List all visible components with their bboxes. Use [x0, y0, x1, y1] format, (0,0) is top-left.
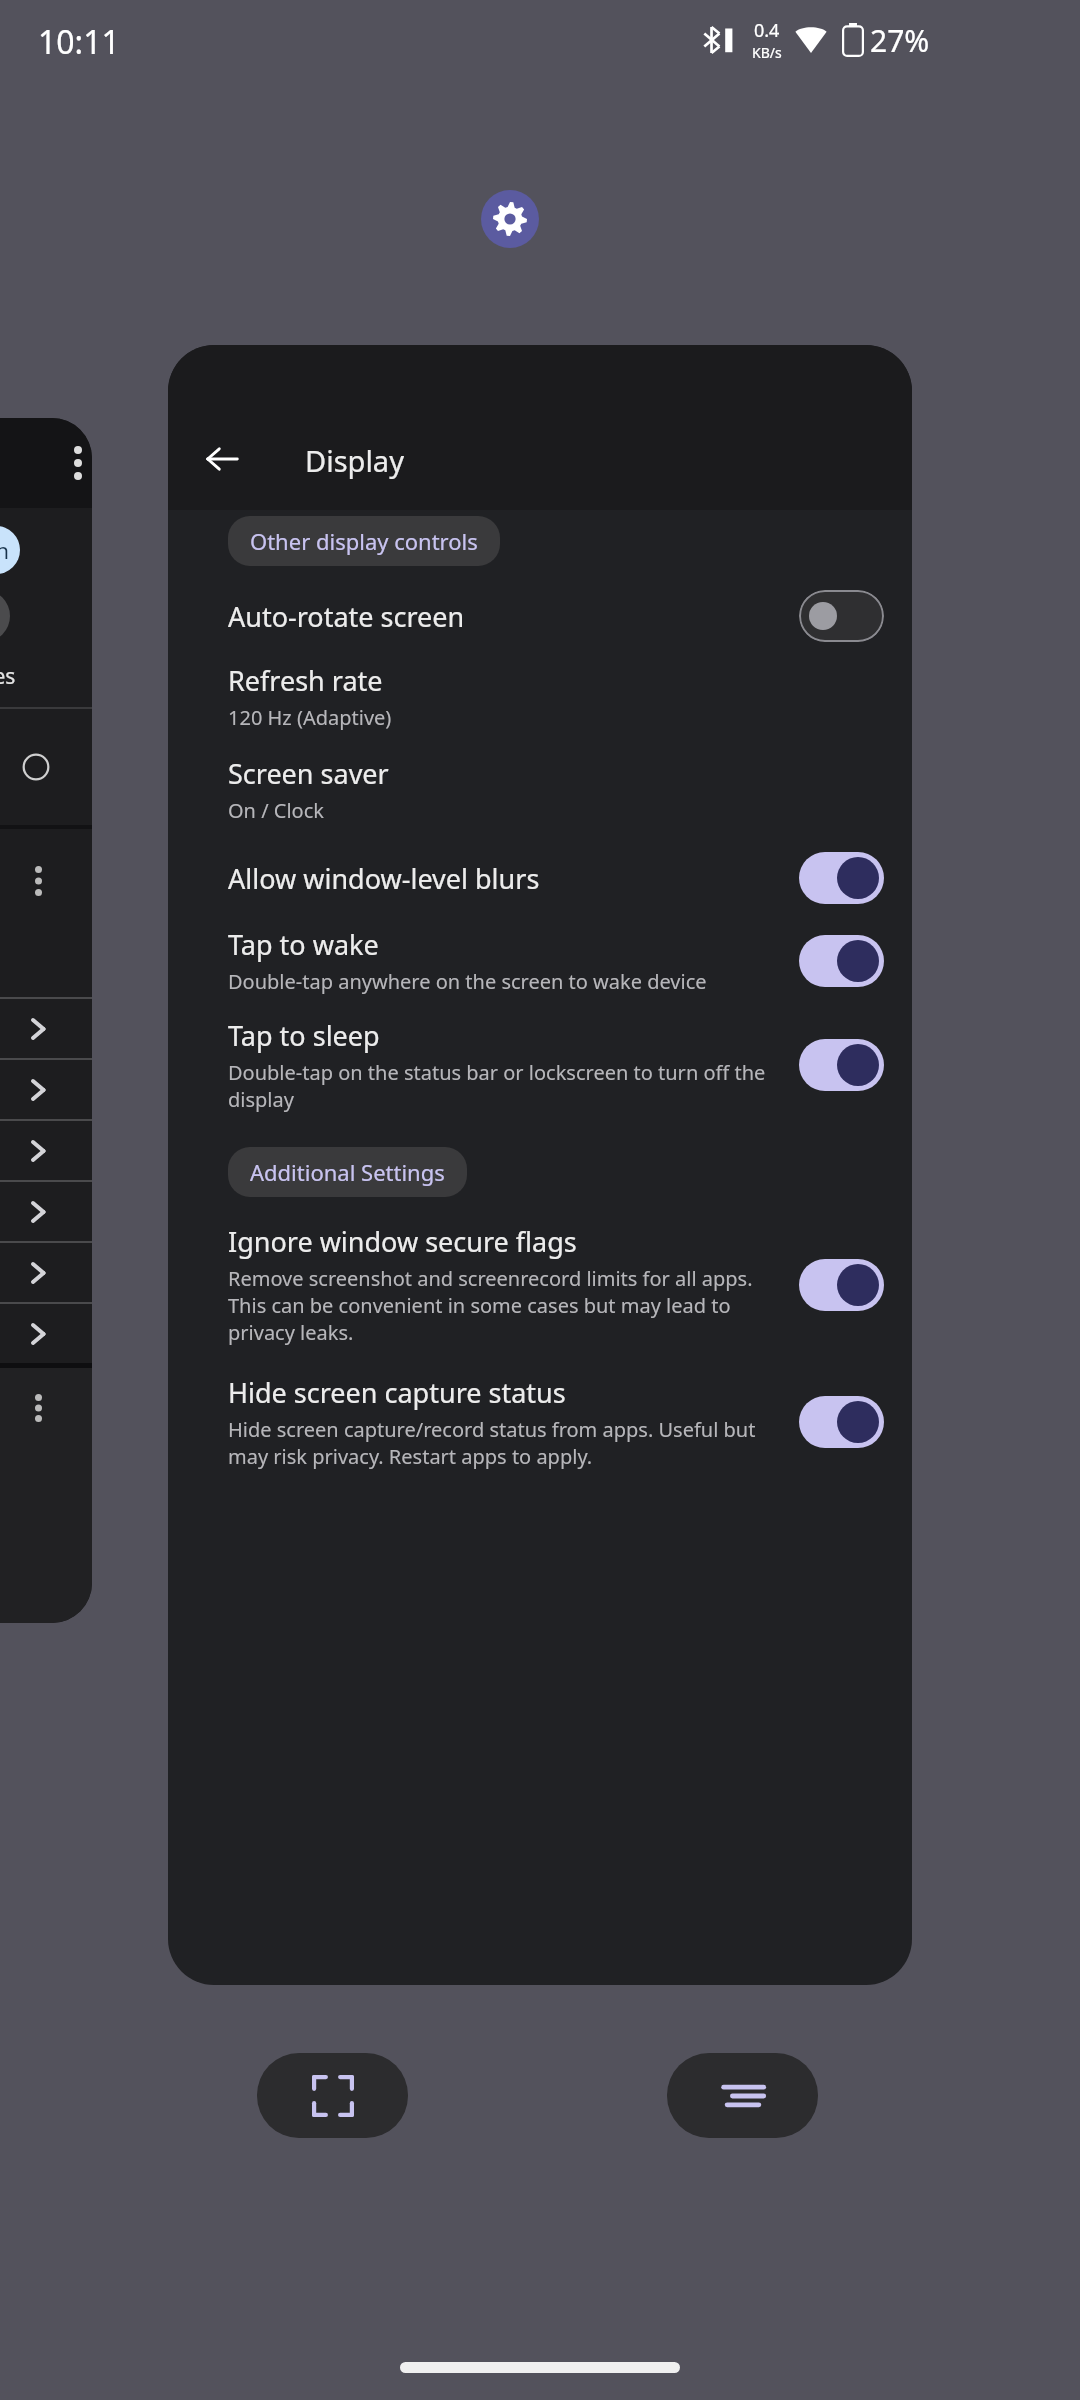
staticText: 10:11: [38, 20, 120, 64]
button[interactable]: Back: [186, 423, 258, 495]
staticText: 120 Hz (Adaptive): [228, 704, 392, 731]
button[interactable]: Screen saver: [168, 755, 912, 824]
button[interactable]: Toggle on: [799, 935, 884, 987]
staticText: Tap to sleep: [228, 1017, 380, 1054]
button[interactable]: Toggle on: [799, 1396, 884, 1448]
staticText: Additional Settings: [250, 1157, 445, 1187]
staticText: Double-tap on the status bar or lockscre…: [228, 1059, 785, 1113]
staticText: Double-tap anywhere on the screen to wak…: [228, 968, 707, 995]
button[interactable]: Allow window-level blurs: [168, 852, 912, 904]
button[interactable]: Fullscreen: [257, 2053, 408, 2138]
staticText: Allow window-level blurs: [228, 860, 540, 897]
staticText: On / Clock: [228, 797, 324, 824]
staticText: Images: [0, 662, 16, 691]
button[interactable]: Other display controls: [228, 516, 500, 566]
button[interactable]: Hide screen capture status: [168, 1374, 912, 1470]
staticText: Screen saver: [228, 755, 389, 792]
button[interactable]: Auto-rotate screen: [168, 590, 912, 642]
staticText: Hide screen capture status: [228, 1374, 566, 1411]
staticText: Tap to wake: [228, 926, 379, 963]
staticText: gn in: [0, 535, 10, 565]
button[interactable]: Ignore window secure flags: [168, 1223, 912, 1346]
staticText: Remove screenshot and screenrecord limit…: [228, 1265, 785, 1346]
button[interactable]: Tap to sleep: [168, 1017, 912, 1113]
button[interactable]: Toggle on: [799, 1039, 884, 1091]
button[interactable]: Toggle on: [799, 1259, 884, 1311]
button[interactable]: Tap to wake: [168, 926, 912, 995]
staticText: 27%: [870, 20, 930, 61]
button[interactable]: Align: [667, 2053, 818, 2138]
button[interactable]: Toggle off: [799, 590, 884, 642]
button[interactable]: Toggle on: [799, 852, 884, 904]
staticText: Auto-rotate screen: [228, 598, 465, 635]
staticText: Refresh rate: [228, 662, 383, 699]
staticText: KB/s: [752, 43, 782, 62]
staticText: Hide screen capture/record status from a…: [228, 1416, 785, 1470]
staticText: Ignore window secure flags: [228, 1223, 577, 1260]
button[interactable]: Refresh rate: [168, 662, 912, 731]
staticText: Other display controls: [250, 526, 478, 556]
staticText: 0.4: [754, 18, 780, 43]
button[interactable]: Settings: [481, 190, 539, 248]
staticText: Display: [305, 441, 404, 480]
button[interactable]: Additional Settings: [228, 1147, 467, 1197]
